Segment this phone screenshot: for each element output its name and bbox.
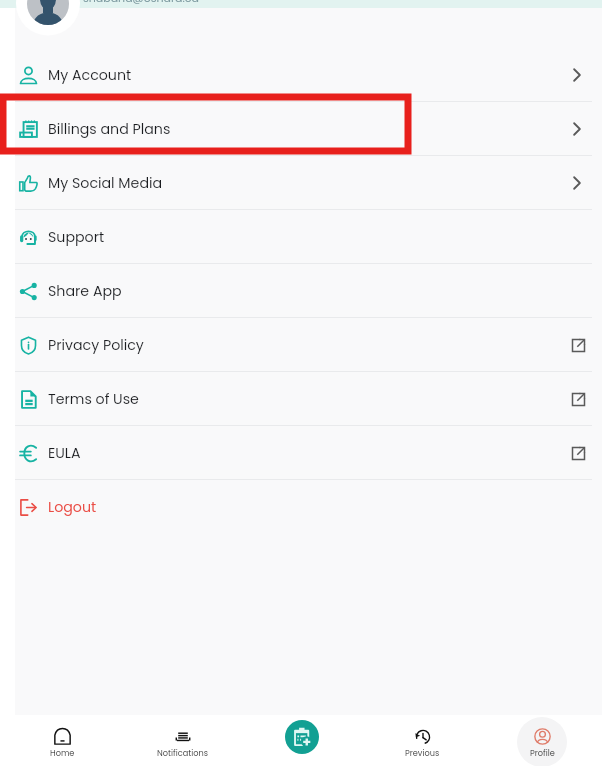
staticText: shabana@oshara.ca: [83, 0, 199, 5]
button[interactable]: My Social Media: [0, 156, 602, 210]
button[interactable]: Add appointment: [285, 720, 319, 754]
staticText: Share App: [48, 281, 122, 301]
button[interactable]: EULA: [0, 426, 602, 480]
staticText: My Social Media: [48, 173, 163, 193]
staticText: Previous: [405, 747, 440, 758]
staticText: Profile: [530, 747, 555, 758]
button[interactable]: Share App: [0, 264, 602, 318]
button[interactable]: [517, 717, 567, 766]
button[interactable]: Previous: [362, 715, 482, 766]
button[interactable]: Logout: [0, 480, 602, 534]
button[interactable]: Privacy Policy: [0, 318, 602, 372]
button[interactable]: Notifications: [122, 715, 242, 766]
staticText: Privacy Policy: [48, 335, 144, 355]
button[interactable]: Billings and Plans: [0, 102, 602, 156]
staticText: My Account: [48, 65, 132, 85]
staticText: EULA: [48, 443, 81, 463]
staticText: Notifications: [157, 747, 208, 758]
button[interactable]: My Account: [0, 48, 602, 102]
staticText: Billings and Plans: [48, 119, 171, 139]
staticText: Support: [48, 227, 105, 247]
button[interactable]: Home: [3, 715, 122, 766]
button[interactable]: Terms of Use: [0, 372, 602, 426]
staticText: Terms of Use: [48, 389, 139, 409]
button[interactable]: Support: [0, 210, 602, 264]
staticText: Home: [50, 747, 75, 758]
staticText: Logout: [48, 497, 97, 517]
